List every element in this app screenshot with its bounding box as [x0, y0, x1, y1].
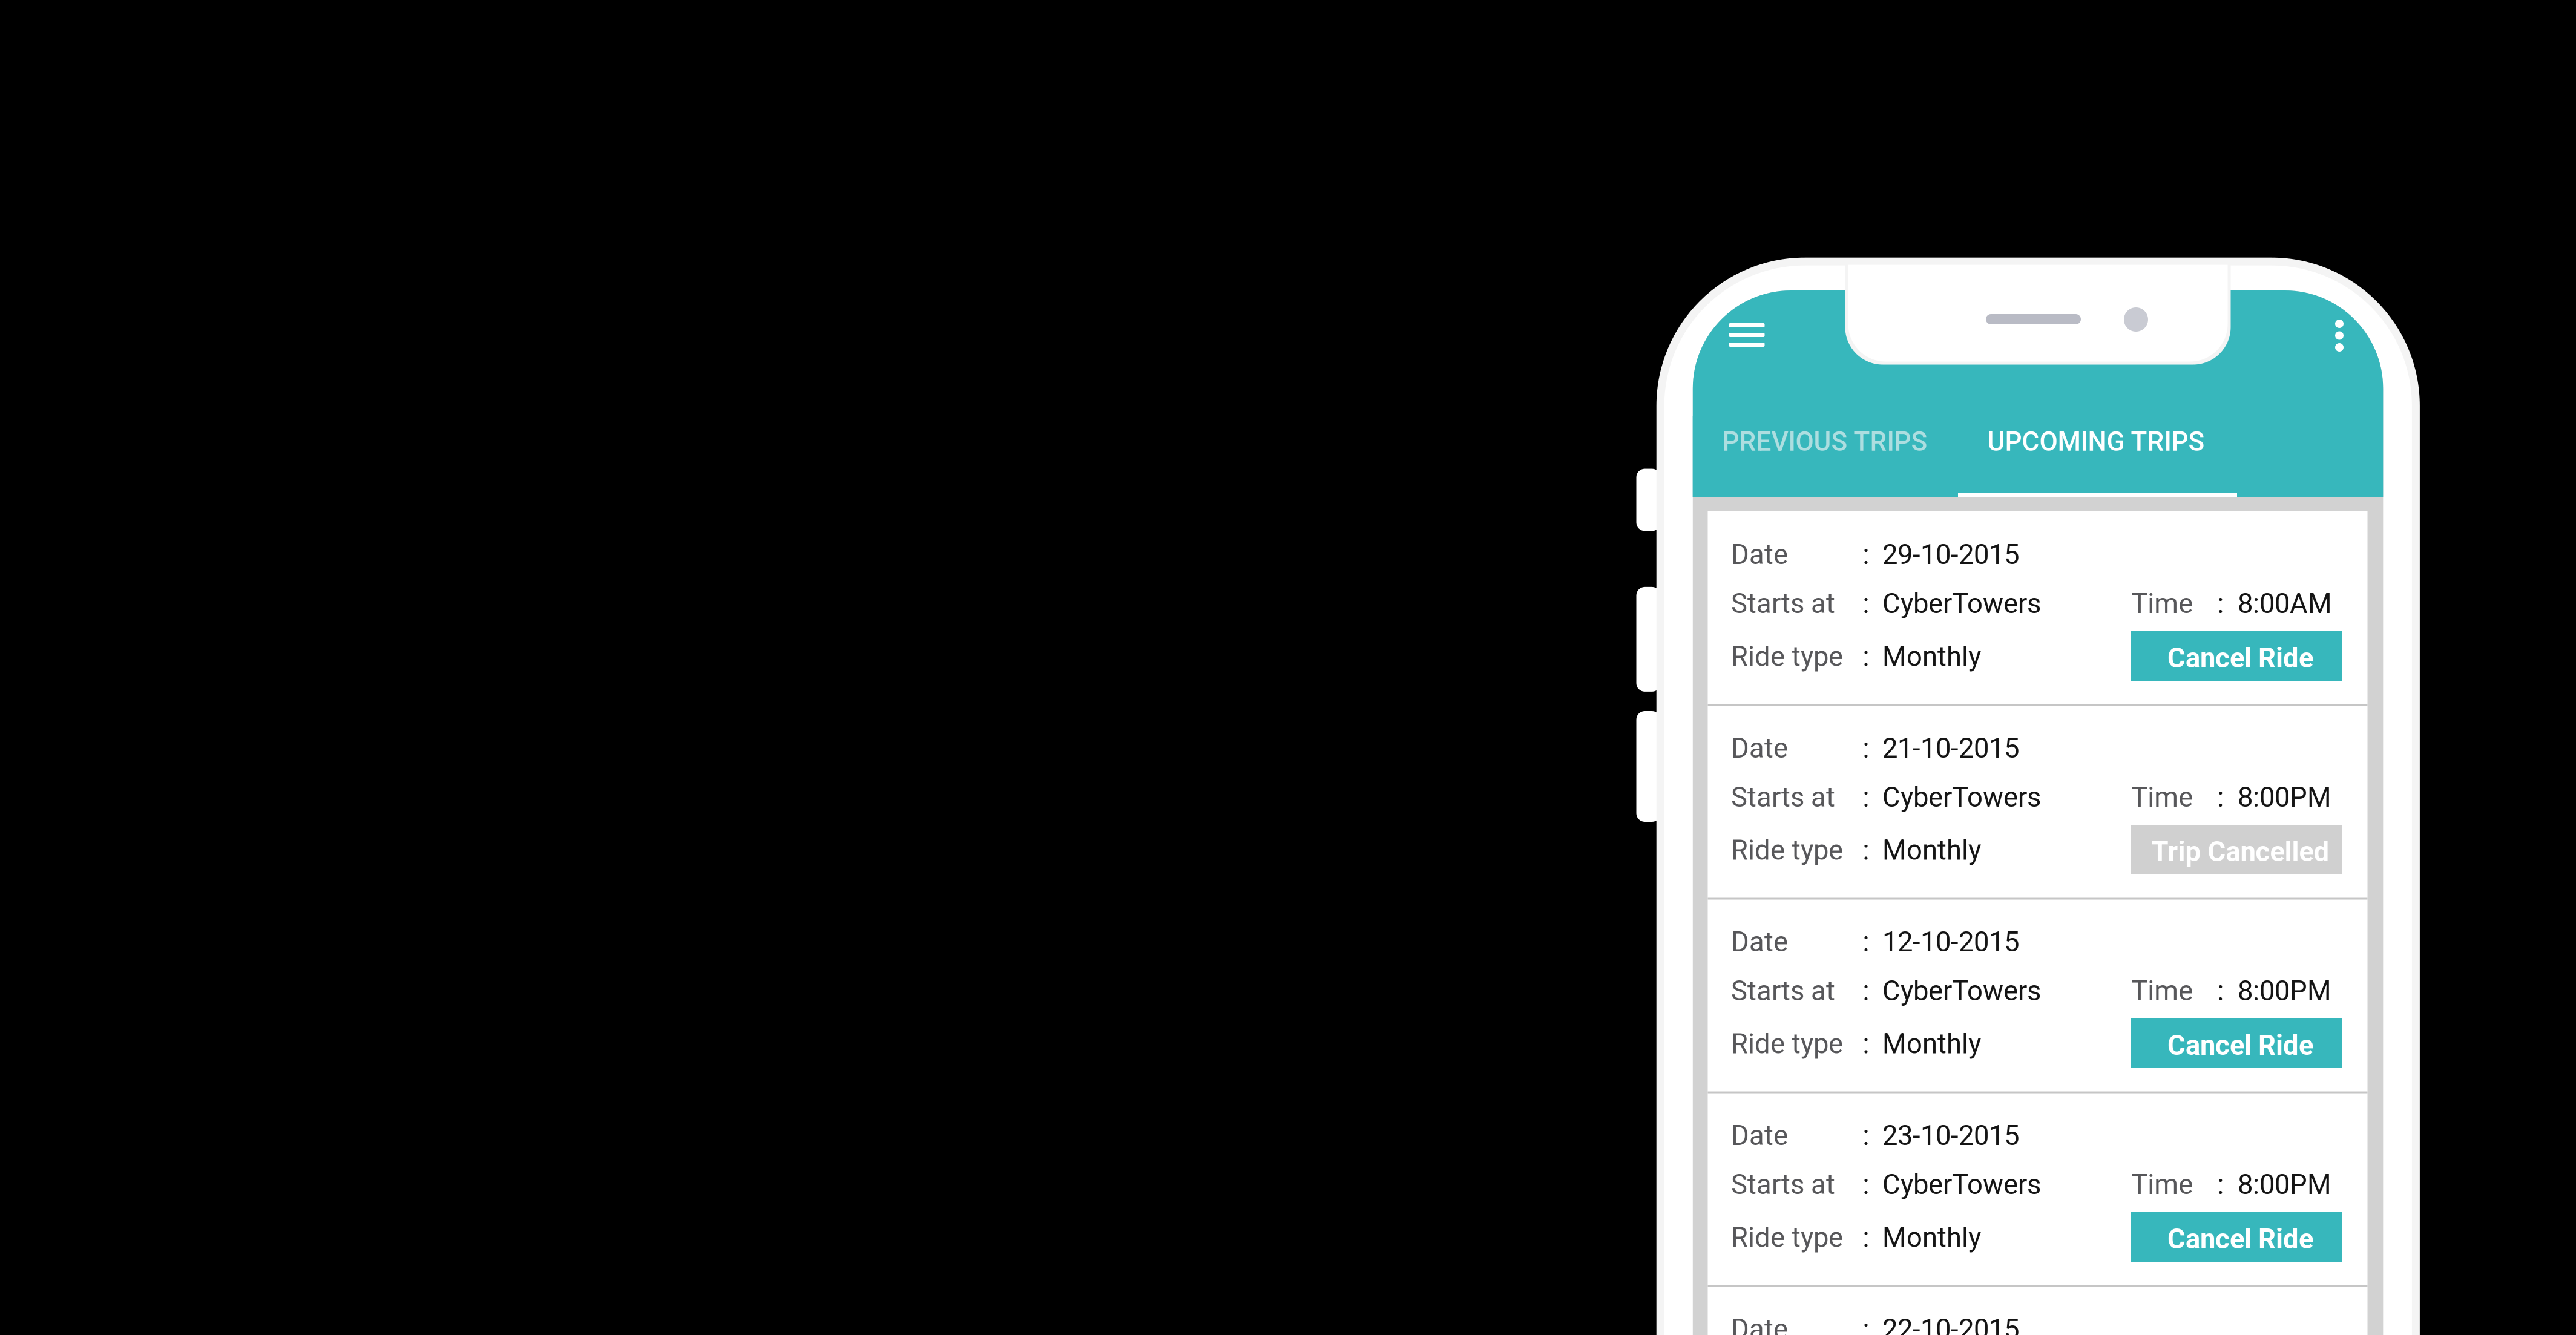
staticText: :: [1863, 781, 1869, 813]
staticText: Starts at: [1731, 781, 1835, 813]
staticText: 23-10-2015: [1882, 1120, 2019, 1152]
staticText: :: [1863, 1028, 1869, 1060]
staticText: Starts at: [1731, 975, 1835, 1007]
staticText: :: [1863, 1313, 1869, 1335]
staticText: :: [1863, 539, 1869, 571]
staticText: CyberTowers: [1882, 781, 2041, 813]
staticText: Cancel Ride: [2167, 1029, 2313, 1061]
staticText: UPCOMING TRIPS: [1987, 426, 2205, 457]
staticText: Time: [2131, 781, 2193, 813]
staticText: Monthly: [1882, 1222, 1981, 1254]
staticText: Date: [1731, 1120, 1788, 1152]
button[interactable]: PREVIOUS TRIPS: [1679, 416, 1958, 497]
staticText: Monthly: [1882, 641, 1981, 673]
staticText: 21-10-2015: [1882, 732, 2019, 764]
button[interactable]: More options: [2303, 299, 2376, 372]
staticText: Ride type: [1731, 1222, 1843, 1254]
staticText: Ride type: [1731, 641, 1843, 673]
staticText: Ride type: [1731, 834, 1843, 866]
staticText: Cancel Ride: [2167, 1223, 2313, 1255]
staticText: Trip Cancelled: [2151, 836, 2329, 868]
button[interactable]: Cancel Ride: [2131, 631, 2342, 681]
staticText: Monthly: [1882, 1028, 1981, 1060]
staticText: CyberTowers: [1882, 1169, 2041, 1201]
staticText: Date: [1731, 539, 1788, 571]
staticText: Cancel Ride: [2167, 642, 2313, 674]
staticText: Monthly: [1882, 834, 1981, 866]
button[interactable]: Trip Cancelled: [2131, 825, 2342, 874]
staticText: 8:00AM: [2238, 588, 2332, 620]
staticText: :: [1863, 641, 1869, 673]
staticText: Starts at: [1731, 1169, 1835, 1201]
staticText: 8:00PM: [2238, 975, 2332, 1007]
staticText: :: [1863, 588, 1869, 620]
button[interactable]: Cancel Ride: [2131, 1018, 2342, 1068]
staticText: 12-10-2015: [1882, 926, 2019, 958]
staticText: 22-10-2015: [1882, 1313, 2019, 1335]
staticText: :: [2217, 975, 2224, 1007]
button[interactable]: Menu: [1710, 299, 1783, 371]
button[interactable]: Cancel Ride: [2131, 1212, 2342, 1262]
staticText: :: [1863, 1169, 1869, 1201]
button[interactable]: UPCOMING TRIPS: [1958, 416, 2237, 497]
staticText: Time: [2131, 588, 2193, 620]
staticText: :: [2217, 588, 2224, 620]
staticText: Date: [1731, 926, 1788, 958]
staticText: :: [1863, 1120, 1869, 1152]
staticText: CyberTowers: [1882, 588, 2041, 620]
staticText: :: [1863, 1222, 1869, 1254]
staticText: CyberTowers: [1882, 975, 2041, 1007]
staticText: 8:00PM: [2238, 781, 2332, 813]
staticText: :: [1863, 732, 1869, 764]
staticText: Date: [1731, 1313, 1788, 1335]
staticText: :: [1863, 926, 1869, 958]
staticText: Starts at: [1731, 588, 1835, 620]
staticText: :: [2217, 1169, 2224, 1201]
staticText: 8:00PM: [2238, 1169, 2332, 1201]
staticText: Date: [1731, 732, 1788, 764]
staticText: :: [2217, 781, 2224, 813]
staticText: Ride type: [1731, 1028, 1843, 1060]
staticText: :: [1863, 975, 1869, 1007]
staticText: PREVIOUS TRIPS: [1722, 426, 1927, 457]
staticText: 29-10-2015: [1882, 539, 2019, 571]
staticText: Time: [2131, 1169, 2193, 1201]
staticText: :: [1863, 834, 1869, 866]
staticText: Time: [2131, 975, 2193, 1007]
